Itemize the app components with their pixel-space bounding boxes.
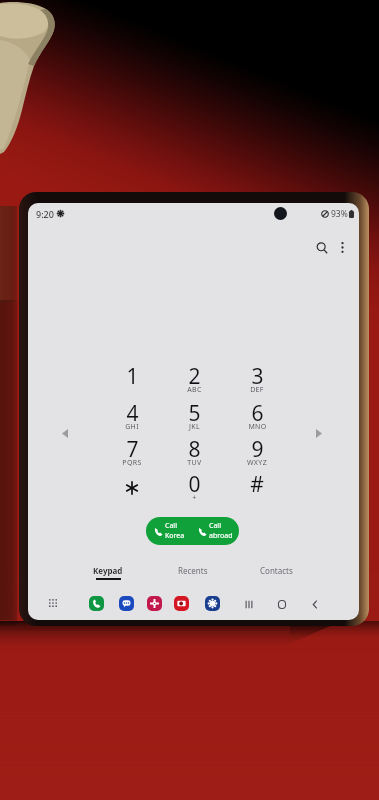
staticText: 1	[126, 362, 139, 388]
staticText: Korea	[165, 531, 185, 541]
staticText: 2	[188, 362, 201, 388]
button[interactable]: Recents	[238, 593, 260, 615]
button[interactable]	[104, 397, 160, 433]
staticText: 9	[251, 435, 264, 461]
button[interactable]	[229, 434, 285, 470]
button[interactable]	[166, 361, 222, 397]
staticText: JKL	[189, 422, 200, 432]
staticText: abroad	[209, 531, 233, 541]
staticText: Call	[165, 521, 177, 531]
staticText: Contacts	[260, 565, 293, 576]
button[interactable]	[104, 469, 160, 505]
button[interactable]: Call	[192, 517, 239, 545]
button[interactable]	[229, 469, 285, 505]
button[interactable]: Apps	[44, 594, 62, 612]
button[interactable]	[166, 469, 222, 505]
staticText: WXYZ	[247, 458, 267, 468]
staticText: 4	[126, 399, 139, 425]
staticText: 7	[126, 435, 139, 461]
staticText: 8	[188, 435, 201, 461]
staticText: 0	[188, 470, 201, 496]
button[interactable]	[104, 434, 160, 470]
staticText: 3	[251, 362, 264, 388]
staticText: 6	[251, 399, 264, 425]
staticText: 5	[188, 399, 201, 425]
button[interactable]: Camera	[174, 596, 189, 611]
staticText: Call	[209, 521, 221, 531]
button[interactable]: Contacts	[250, 565, 302, 583]
staticText: Keypad	[93, 565, 123, 576]
button[interactable]: Call	[146, 517, 192, 545]
staticText: TUV	[187, 458, 202, 468]
button[interactable]: Messages	[119, 596, 134, 611]
staticText: ABC	[187, 385, 202, 395]
staticText: MNO	[248, 422, 267, 432]
button[interactable]: More options	[330, 235, 355, 260]
button[interactable]	[166, 434, 222, 470]
button[interactable]: Settings	[205, 596, 220, 611]
staticText: Recents	[178, 565, 208, 576]
staticText: PQRS	[122, 458, 142, 468]
staticText: DEF	[250, 385, 264, 395]
button[interactable]: Recents	[167, 565, 219, 583]
staticText: 9:20	[36, 208, 54, 220]
button[interactable]: Search	[309, 235, 334, 260]
button[interactable]: Back	[304, 593, 326, 615]
button[interactable]: Gallery	[147, 596, 162, 611]
staticText: GHI	[125, 422, 139, 432]
button[interactable]	[104, 361, 160, 397]
button[interactable]	[229, 397, 285, 433]
button[interactable]: Home	[271, 593, 293, 615]
button[interactable]	[229, 361, 285, 397]
button[interactable]: Keypad	[82, 565, 134, 583]
staticText: +	[192, 493, 197, 503]
button[interactable]	[166, 397, 222, 433]
staticText: 93%	[331, 208, 348, 220]
staticText: #	[250, 470, 264, 496]
button[interactable]: Phone	[89, 596, 104, 611]
